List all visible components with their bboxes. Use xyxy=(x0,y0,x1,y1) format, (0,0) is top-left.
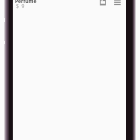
button[interactable]: Shopping bag xyxy=(99,0,107,5)
staticText: Perfume xyxy=(15,0,37,5)
staticText: $ 9 xyxy=(16,3,25,10)
button[interactable]: Menu xyxy=(113,0,122,9)
